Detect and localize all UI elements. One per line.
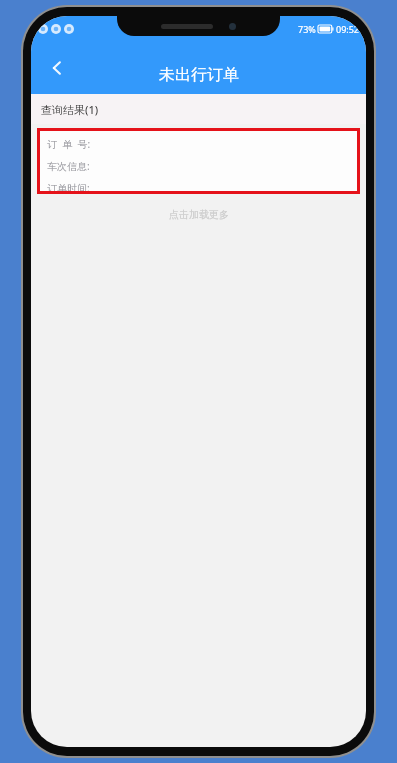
- button[interactable]: 点击加载更多: [31, 203, 366, 225]
- button[interactable]: 订 单 号:: [37, 128, 360, 194]
- staticText: 查询结果(1): [41, 102, 99, 117]
- staticText: 点击加载更多: [169, 208, 229, 221]
- staticText: 车次信息:: [47, 159, 90, 173]
- staticText: 09:52: [336, 23, 360, 35]
- staticText: 未出行订单: [159, 65, 239, 85]
- staticText: 订单时间:: [47, 181, 90, 191]
- staticText: 订 单 号:: [47, 137, 91, 151]
- button[interactable]: Back: [35, 46, 79, 90]
- staticText: 73%: [298, 23, 316, 35]
